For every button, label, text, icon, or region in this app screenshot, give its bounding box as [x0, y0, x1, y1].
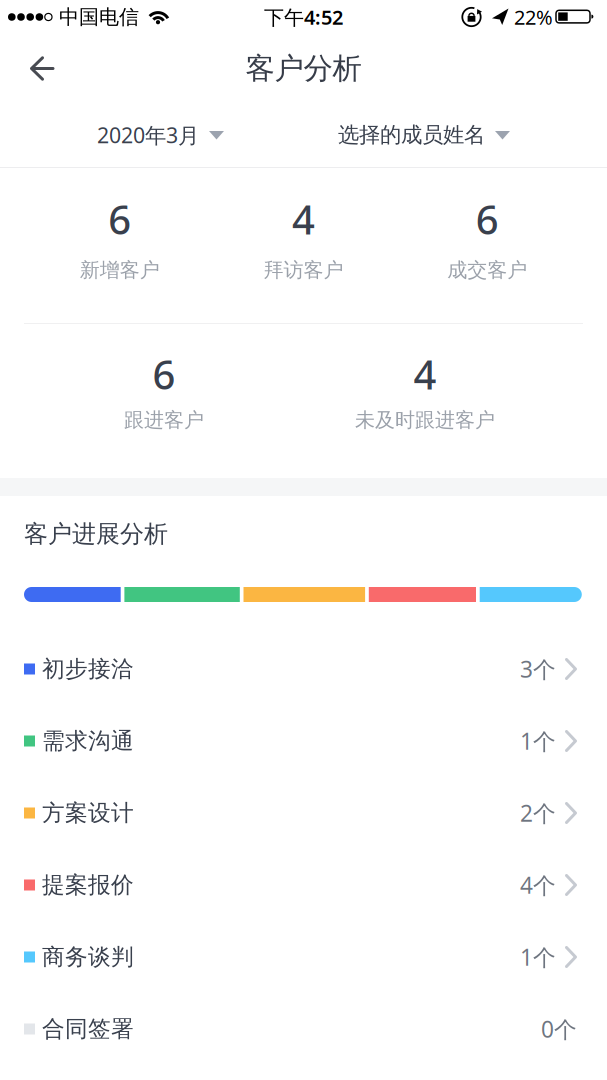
staticText: 1个	[520, 942, 556, 972]
staticText: 6	[108, 192, 131, 245]
staticText: 未及时跟进客户	[355, 408, 495, 432]
button[interactable]: 2020年3月	[97, 121, 224, 149]
button[interactable]: 选择的成员姓名	[338, 122, 510, 148]
staticText: 成交客户	[447, 258, 527, 282]
staticText: 4	[292, 192, 315, 245]
staticText: 方案设计	[42, 799, 134, 827]
staticText: 提案报价	[42, 871, 134, 899]
button[interactable]: 需求沟通	[0, 705, 607, 777]
staticText: 4个	[520, 870, 556, 900]
staticText: 0个	[541, 1014, 577, 1044]
button[interactable]: 方案设计	[0, 777, 607, 849]
staticText: 中国电信	[59, 5, 139, 29]
staticText: 2020年3月	[97, 121, 199, 149]
staticText: 下午4:52	[264, 4, 343, 30]
staticText: 客户进展分析	[24, 519, 168, 549]
staticText: 需求沟通	[42, 727, 134, 755]
staticText: 6	[152, 347, 175, 400]
staticText: 客户分析	[245, 50, 361, 86]
button[interactable]: 返回	[0, 34, 54, 103]
button[interactable]: 合同签署	[0, 993, 607, 1065]
staticText: 2个	[520, 798, 556, 828]
staticText: 4	[413, 347, 436, 400]
staticText: 合同签署	[42, 1015, 134, 1043]
staticText: 选择的成员姓名	[338, 122, 485, 148]
staticText: 跟进客户	[124, 408, 204, 432]
staticText: 22%	[514, 4, 553, 30]
staticText: 6	[476, 192, 499, 245]
staticText: 1个	[520, 726, 556, 756]
staticText: 初步接洽	[42, 655, 134, 683]
button[interactable]: 提案报价	[0, 849, 607, 921]
staticText: 3个	[520, 654, 556, 684]
staticText: 新增客户	[80, 258, 160, 282]
staticText: 商务谈判	[42, 943, 134, 971]
staticText: 拜访客户	[263, 258, 343, 282]
button[interactable]: 初步接洽	[0, 633, 607, 705]
button[interactable]: 商务谈判	[0, 921, 607, 993]
